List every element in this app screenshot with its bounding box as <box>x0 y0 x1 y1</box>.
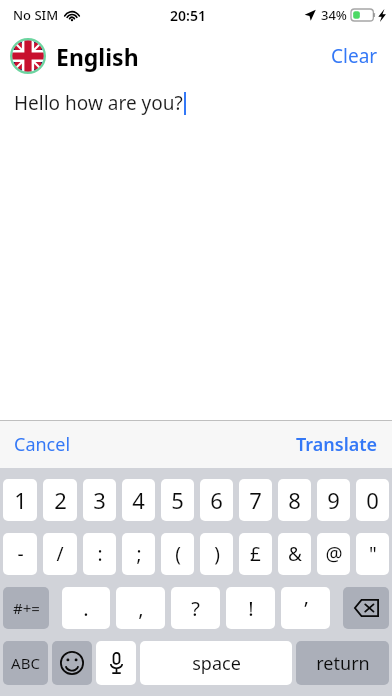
staticText: 34% <box>321 6 347 24</box>
button[interactable]: 2 <box>43 479 77 521</box>
staticText: 8 <box>288 485 301 515</box>
button[interactable]: 7 <box>239 479 272 521</box>
button[interactable]: Backspace <box>343 587 389 629</box>
button[interactable]: 3 <box>83 479 116 521</box>
button[interactable]: Clear <box>317 35 392 77</box>
button[interactable]: ? <box>171 587 220 629</box>
staticText: 20:51 <box>170 6 206 25</box>
button[interactable]: @ <box>317 533 350 575</box>
button[interactable]: 6 <box>200 479 233 521</box>
staticText: Clear <box>331 43 378 69</box>
staticText: , <box>138 595 144 622</box>
staticText: £ <box>250 541 261 567</box>
button[interactable]: : <box>83 533 116 575</box>
staticText: #+= <box>13 598 40 618</box>
button[interactable]: Cancel <box>0 421 85 468</box>
staticText: ’ <box>304 595 308 622</box>
button[interactable]: ) <box>200 533 233 575</box>
button[interactable]: return <box>296 641 389 685</box>
button[interactable]: ! <box>226 587 275 629</box>
button[interactable]: English <box>0 32 145 80</box>
staticText: ; <box>136 541 142 567</box>
staticText: 6 <box>210 485 223 515</box>
staticText: ) <box>214 541 220 567</box>
staticText: @ <box>325 541 343 567</box>
button[interactable]: #+= <box>3 587 49 629</box>
button[interactable]: 8 <box>278 479 311 521</box>
button[interactable]: Emoji keyboard <box>52 641 92 685</box>
button[interactable]: £ <box>239 533 272 575</box>
button[interactable]: / <box>43 533 77 575</box>
staticText: / <box>56 541 64 567</box>
button[interactable]: , <box>116 587 165 629</box>
staticText: - <box>17 541 24 567</box>
button[interactable]: 9 <box>317 479 350 521</box>
staticText: 2 <box>54 485 67 515</box>
staticText: ( <box>175 541 181 567</box>
button[interactable]: space <box>140 641 292 685</box>
button[interactable]: & <box>278 533 311 575</box>
button[interactable]: " <box>356 533 389 575</box>
button[interactable]: Dictate <box>96 641 136 685</box>
staticText: 1 <box>14 485 27 515</box>
staticText: 3 <box>93 485 106 515</box>
staticText: ! <box>248 595 254 622</box>
staticText: ? <box>191 595 200 622</box>
button[interactable]: 0 <box>356 479 389 521</box>
button[interactable]: 4 <box>122 479 155 521</box>
button[interactable]: - <box>3 533 37 575</box>
button[interactable]: ’ <box>281 587 330 629</box>
button[interactable]: ( <box>161 533 194 575</box>
button[interactable]: Translate <box>282 421 392 468</box>
staticText: & <box>288 541 302 567</box>
button[interactable]: . <box>62 587 110 629</box>
staticText: Cancel <box>14 432 71 457</box>
staticText: . <box>83 595 89 622</box>
staticText: 5 <box>171 485 184 515</box>
button[interactable]: ABC <box>3 641 48 685</box>
staticText: ABC <box>11 653 40 673</box>
staticText: return <box>316 651 370 676</box>
button[interactable]: ; <box>122 533 155 575</box>
staticText: Translate <box>296 432 378 457</box>
staticText: No SIM <box>13 6 59 24</box>
staticText: 4 <box>132 485 145 515</box>
staticText: space <box>192 651 241 676</box>
button[interactable]: 5 <box>161 479 194 521</box>
staticText: 0 <box>366 485 379 515</box>
staticText: 7 <box>249 485 262 515</box>
staticText: English <box>56 41 139 72</box>
staticText: 9 <box>327 485 340 515</box>
staticText: " <box>369 541 377 567</box>
button[interactable]: 1 <box>3 479 37 521</box>
staticText: : <box>97 541 103 567</box>
staticText: Hello how are you? <box>14 90 183 116</box>
